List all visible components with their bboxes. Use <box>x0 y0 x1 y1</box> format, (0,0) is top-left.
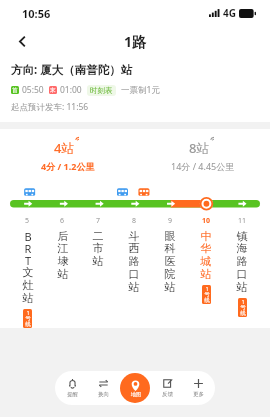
button[interactable]: 地图 <box>120 373 150 403</box>
button[interactable]: 10 <box>188 216 224 304</box>
staticText: 地图 <box>131 391 141 397</box>
staticText: 8站 <box>189 139 210 157</box>
staticText: 反馈 <box>162 391 173 398</box>
staticText: 1号线 <box>25 309 31 328</box>
staticText: 6 <box>60 216 65 226</box>
staticText: 提醒 <box>67 391 78 398</box>
staticText: BRT文灶站 <box>22 229 34 306</box>
staticText: 1路 <box>124 32 147 51</box>
staticText: 方向: 厦大（南普陀）站 <box>11 62 133 78</box>
staticText: 斗西路口站 <box>128 229 140 295</box>
staticText: 05:50 <box>22 84 44 96</box>
staticText: 镇海路口站 <box>236 229 248 295</box>
staticText: 5 <box>25 216 30 226</box>
staticText: 换向 <box>98 391 109 398</box>
button[interactable]: 6 <box>45 216 80 282</box>
staticText: 10:56 <box>22 6 51 21</box>
staticText: 一票制1元 <box>121 84 160 96</box>
staticText: 眼科医院站 <box>164 229 176 295</box>
button[interactable]: 5 <box>10 216 45 328</box>
staticText: 14分 / 4.45公里 <box>171 160 235 172</box>
button[interactable]: 时刻表 <box>87 85 116 96</box>
button[interactable]: 更多 <box>183 378 213 398</box>
button[interactable]: Back <box>8 27 36 55</box>
button[interactable]: 8站 <box>135 139 270 172</box>
staticText: 1号线 <box>204 285 210 304</box>
staticText: 7 <box>96 216 101 226</box>
button[interactable]: 9 <box>152 216 188 295</box>
button[interactable]: 反馈 <box>152 378 182 398</box>
staticText: 4分 / 1.2公里 <box>41 160 95 172</box>
staticText: 首 <box>12 87 18 94</box>
staticText: 4站 <box>54 139 75 157</box>
staticText: 末 <box>50 87 56 94</box>
staticText: 9 <box>168 216 173 226</box>
staticText: 4G <box>223 6 236 20</box>
staticText: 01:00 <box>60 84 82 96</box>
staticText: 1号线 <box>240 298 246 317</box>
button[interactable]: 7 <box>80 216 116 269</box>
staticText: 起点预计发车: 11:56 <box>11 101 89 113</box>
button[interactable]: 4站 <box>0 139 135 172</box>
staticText: 8 <box>132 216 137 226</box>
staticText: 中华城站 <box>200 229 212 282</box>
staticText: 10 <box>202 216 211 226</box>
button[interactable]: 提醒 <box>57 378 87 398</box>
button[interactable]: 换向 <box>88 378 118 398</box>
button[interactable]: 11 <box>224 216 260 317</box>
staticText: 时刻表 <box>90 86 113 95</box>
staticText: 后江埭站 <box>57 229 69 282</box>
staticText: 更多 <box>193 391 204 398</box>
staticText: 11 <box>238 216 247 226</box>
staticText: 二市站 <box>92 229 104 269</box>
button[interactable]: 8 <box>116 216 152 295</box>
